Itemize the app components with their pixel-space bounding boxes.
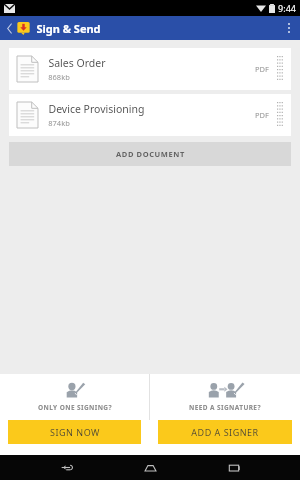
button[interactable]: Recent apps <box>217 455 251 480</box>
staticText: SIGN NOW <box>50 426 100 438</box>
staticText: Sign & Send <box>36 21 101 36</box>
staticText: 9:44 <box>278 2 296 14</box>
staticText: Sales Order <box>48 56 106 70</box>
button[interactable]: ADD A SIGNER <box>158 420 292 444</box>
button[interactable]: Navigate up <box>3 18 15 38</box>
button[interactable]: Sales Order <box>9 48 291 90</box>
button[interactable]: Home <box>133 455 167 480</box>
staticText: NEED A SIGNATURE? <box>189 403 261 412</box>
staticText: ADD A SIGNER <box>191 426 259 438</box>
button[interactable]: Reorder document <box>277 102 284 128</box>
button[interactable]: Back <box>50 455 84 480</box>
button[interactable]: ADD DOCUMENT <box>9 142 291 166</box>
staticText: ADD DOCUMENT <box>116 149 185 159</box>
staticText: ONLY ONE SIGNING? <box>38 403 112 412</box>
button[interactable]: Reorder document <box>277 56 284 82</box>
staticText: Device Provisioning <box>48 102 145 116</box>
staticText: 874kb <box>48 118 70 128</box>
staticText: PDF <box>255 64 269 74</box>
staticText: 868kb <box>48 72 70 82</box>
button[interactable]: Device Provisioning <box>9 94 291 136</box>
button[interactable]: SIGN NOW <box>8 420 141 444</box>
staticText: PDF <box>255 110 269 120</box>
button[interactable]: More options <box>278 16 300 40</box>
